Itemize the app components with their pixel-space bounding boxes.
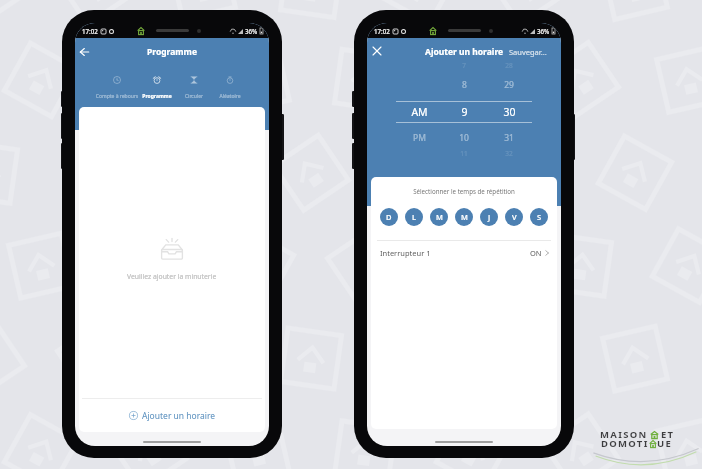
staticText: 29	[504, 79, 514, 91]
staticText: S	[537, 212, 542, 222]
staticText: Aléatoire	[211, 93, 249, 100]
button[interactable]: Interrupteur 1	[380, 240, 549, 265]
button[interactable]: Aléatoire	[211, 71, 249, 105]
staticText: 17:02	[374, 27, 390, 35]
staticText: UE	[657, 437, 673, 450]
staticText: M	[436, 212, 443, 222]
staticText: AM	[411, 105, 428, 119]
staticText: 10	[459, 132, 469, 144]
staticText: Programme	[137, 93, 177, 100]
staticText: ON	[530, 248, 542, 258]
button[interactable]: Compte à rebours	[87, 71, 147, 105]
staticText: 8	[462, 79, 467, 91]
button[interactable]: D	[380, 208, 398, 226]
staticText: Veuillez ajouter la minuterie	[127, 272, 217, 281]
staticText: MAISON	[600, 428, 648, 441]
button[interactable]: V	[505, 208, 523, 226]
staticText: 30	[503, 105, 516, 119]
staticText: 32	[505, 149, 513, 158]
staticText: V	[512, 212, 517, 222]
staticText: 36%	[537, 27, 550, 35]
staticText: 7	[462, 61, 466, 70]
button[interactable]: Programme	[137, 71, 177, 105]
button[interactable]: Back	[76, 43, 93, 60]
button[interactable]: M	[430, 208, 448, 226]
staticText: L	[412, 212, 417, 222]
staticText: J	[488, 212, 491, 222]
staticText: D	[386, 212, 392, 222]
staticText: Ajouter un horaire	[142, 410, 216, 422]
staticText: DOMOTI	[601, 437, 649, 450]
staticText: PM	[413, 132, 426, 144]
button[interactable]: S	[530, 208, 548, 226]
button[interactable]: M	[455, 208, 473, 226]
staticText: 9	[461, 105, 468, 119]
button[interactable]: L	[405, 208, 423, 226]
button[interactable]: Ajouter un horaire	[79, 399, 265, 432]
staticText: Programme	[147, 46, 197, 58]
button[interactable]: Circuler	[177, 71, 211, 105]
staticText: 17:02	[82, 27, 98, 35]
staticText: 28	[505, 61, 513, 70]
staticText: Circuler	[177, 93, 211, 100]
button[interactable]: J	[480, 208, 498, 226]
staticText: Interrupteur 1	[380, 248, 431, 258]
staticText: ET	[661, 428, 675, 441]
staticText: 11	[460, 149, 468, 158]
button[interactable]: Close	[368, 42, 385, 59]
staticText: 31	[504, 132, 514, 144]
staticText: Compte à rebours	[87, 93, 147, 100]
staticText: 36%	[245, 27, 258, 35]
staticText: M	[461, 212, 468, 222]
button[interactable]: Sauvegar...	[509, 47, 547, 57]
staticText: Sélectionner le temps de répétition	[371, 187, 557, 195]
staticText: Ajouter un horaire	[425, 46, 504, 58]
